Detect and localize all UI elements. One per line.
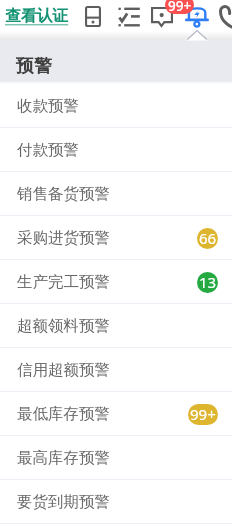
staticText: 66 [199, 228, 217, 248]
button[interactable]: Call [218, 3, 232, 31]
button[interactable]: 要货到期预警 [0, 480, 232, 524]
staticText: 99+ [190, 404, 216, 424]
staticText: 信用超额预警 [17, 360, 110, 380]
button[interactable]: 查看认证 [5, 6, 69, 26]
staticText: 销售备货预警 [17, 184, 110, 204]
button[interactable]: Tasks [118, 7, 140, 27]
staticText: 收款预警 [17, 96, 79, 116]
staticText: 99+ [168, 0, 192, 14]
button[interactable]: 超额领料预警 [0, 304, 232, 348]
staticText: 超额领料预警 [17, 316, 110, 336]
button[interactable]: 信用超额预警 [0, 348, 232, 392]
button[interactable]: Messages [151, 7, 173, 27]
staticText: 要货到期预警 [17, 492, 110, 512]
staticText: 采购进货预警 [17, 228, 110, 248]
button[interactable]: 收款预警 [0, 84, 232, 128]
button[interactable]: 最高库存预警 [0, 436, 232, 480]
button[interactable]: 付款预警 [0, 128, 232, 172]
staticText: 13 [199, 272, 217, 292]
staticText: 最低库存预警 [17, 404, 110, 424]
button[interactable]: 生产完工预警 [0, 260, 232, 304]
staticText: 预警 [16, 55, 52, 78]
button[interactable]: 采购进货预警 [0, 216, 232, 260]
staticText: 付款预警 [17, 140, 79, 160]
button[interactable]: Documents [85, 6, 101, 27]
button[interactable]: 最低库存预警 [0, 392, 232, 436]
staticText: 最高库存预警 [17, 448, 110, 468]
staticText: 生产完工预警 [17, 272, 110, 292]
button[interactable]: 销售备货预警 [0, 172, 232, 216]
staticText: 查看认证 [5, 6, 69, 26]
button[interactable]: Alerts [185, 6, 209, 27]
